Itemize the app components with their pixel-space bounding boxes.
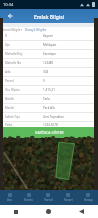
staticText: Harita [24,198,33,202]
staticText: 10:34 [3,2,14,7]
button[interactable]: Ada [0,68,98,76]
staticText: Melikgazi [43,43,57,47]
staticText: İlçe [5,43,10,47]
staticText: Esentepe [43,52,56,56]
staticText: Mahalle No [5,61,22,65]
staticText: Hesap [84,198,93,202]
button[interactable]: Favori [58,190,78,205]
staticText: Mahalle/Köy [5,52,23,56]
button[interactable]: Nitelik [0,95,98,103]
staticText: Nitelik [5,97,14,101]
staticText: Parsel [44,198,53,202]
button[interactable]: Pafta [0,122,98,127]
button[interactable]: Mahalle No [0,59,98,67]
button[interactable]: Detaylı Bilgiler [24,27,48,32]
button[interactable]: HARİTADA GÖSTER [0,127,98,138]
staticText: Pafta [5,123,13,127]
staticText: Gesi Toprakları [43,115,64,119]
button[interactable]: İlçe [0,41,98,49]
staticText: Genel Bilgiler [2,28,22,32]
button[interactable]: Parsel [0,77,98,85]
button[interactable]: Mahalle/Köy [0,50,98,58]
button[interactable]: Sahibi Tipi [0,113,98,121]
staticText: Yüz Ölçüm [5,88,20,92]
button[interactable]: Recents [0,205,32,218]
button[interactable]: Home [32,205,65,218]
staticText: 123480 [43,61,54,65]
staticText: Emlak Bilgisi [34,14,65,21]
staticText: Ara [7,198,12,202]
staticText: Mevkii [5,106,15,110]
staticText: Sahibi Tipi [5,115,20,119]
button[interactable]: Hesap [78,190,98,205]
button[interactable]: Ara [0,190,19,205]
button[interactable]: Yüz Ölçüm [0,86,98,94]
staticText: 304 [43,70,49,74]
button[interactable]: Back [5,11,15,21]
button[interactable]: İl [0,32,98,40]
staticText: 1.415,21 [43,88,55,92]
staticText: Favori [64,198,73,202]
staticText: Tarla [43,97,50,101]
button[interactable]: Harita [19,190,38,205]
staticText: Park Altı [43,106,55,110]
button[interactable]: Parsel [38,190,58,205]
staticText: İl [5,34,7,38]
button[interactable]: Genel Bilgiler [0,27,24,32]
button[interactable]: Back [65,205,98,218]
staticText: 1234-5678 [43,123,58,127]
staticText: Kayseri [43,34,54,38]
staticText: Detaylı Bilgiler [25,28,47,32]
staticText: Parsel [5,79,14,83]
staticText: Ada [5,70,11,74]
staticText: 9 [43,79,45,83]
staticText: HARİTADA GÖSTER [35,131,64,135]
button[interactable]: Mevkii [0,104,98,112]
